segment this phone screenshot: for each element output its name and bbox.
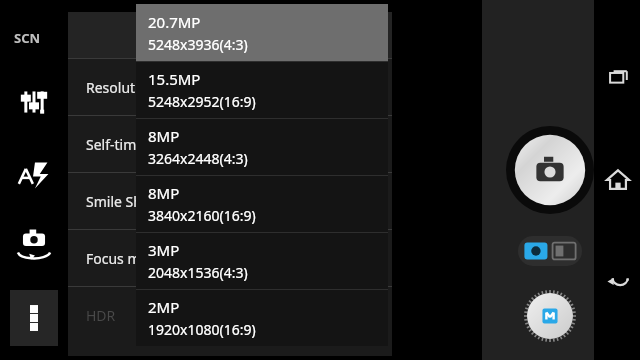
button[interactable]: Camera video toggle — [518, 236, 582, 266]
staticText: 15.5MP — [148, 69, 201, 89]
staticText: Self-timer — [86, 135, 150, 154]
staticText: HDR — [86, 306, 116, 325]
button[interactable]: Settings sliders — [10, 78, 58, 126]
staticText: 5248x3936(4:3) — [148, 35, 248, 54]
button[interactable]: 15.5MP — [136, 61, 388, 118]
button[interactable]: Home — [596, 158, 640, 202]
staticText: 2MP — [148, 297, 180, 317]
staticText: Focus mode — [86, 249, 166, 268]
button[interactable]: 8MP — [136, 175, 388, 232]
button[interactable]: 3MP — [136, 232, 388, 289]
button[interactable]: 8MP — [136, 118, 388, 175]
button[interactable]: More options — [10, 290, 58, 346]
staticText: 1920x1080(16:9) — [148, 320, 256, 339]
staticText: 20.7MP — [148, 12, 201, 32]
button[interactable]: Back — [596, 256, 640, 300]
button[interactable]: 2MP — [136, 289, 388, 346]
staticText: 8MP — [148, 126, 180, 146]
button[interactable]: HDR — [68, 287, 392, 343]
button[interactable]: Resolution — [68, 59, 392, 115]
button[interactable]: Flash auto — [10, 150, 58, 198]
staticText: 3264x2448(4:3) — [148, 149, 248, 168]
staticText: 2048x1536(4:3) — [148, 263, 248, 282]
button[interactable]: Focus mode — [68, 230, 392, 286]
staticText: SCN — [14, 29, 41, 47]
staticText: Resolution — [86, 78, 156, 97]
staticText: 3MP — [148, 240, 180, 260]
staticText: 8MP — [148, 183, 180, 203]
staticText: Smile Shutter — [86, 192, 175, 211]
button[interactable]: Recents — [596, 58, 640, 102]
button[interactable]: 20.7MP — [136, 4, 388, 61]
staticText: 3840x2160(16:9) — [148, 206, 256, 225]
button[interactable]: Self-timer — [68, 116, 392, 172]
button[interactable]: Switch camera — [10, 222, 58, 270]
button[interactable]: Smile Shutter — [68, 173, 392, 229]
staticText: 5248x2952(16:9) — [148, 92, 256, 111]
button[interactable]: Shooting mode — [522, 288, 578, 344]
button[interactable]: Shutter — [506, 126, 594, 214]
